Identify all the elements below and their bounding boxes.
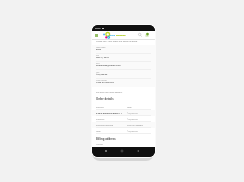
staticText: PAYMENT METHOD: <box>96 80 108 82</box>
button[interactable]: Back <box>136 149 139 152</box>
staticText: Total <box>127 106 151 109</box>
staticText: Payment method <box>96 124 127 127</box>
staticText: ₹28,000.00 <box>96 73 108 76</box>
staticText: 0.25/0 Diamond Rings × 1 <box>96 112 127 115</box>
button[interactable]: Home <box>120 149 123 152</box>
staticText: Subtotal <box>96 118 127 121</box>
button[interactable]: PAYMENT METHOD: <box>92 79 155 87</box>
button[interactable]: EMAIL: <box>92 62 155 70</box>
staticText: May 3, 2018 <box>96 56 109 59</box>
button[interactable]: TOTAL: <box>92 71 155 79</box>
button[interactable]: Recent apps <box>104 149 107 152</box>
staticText: ₹28,000.00 <box>127 118 151 121</box>
staticText: Billing address <box>96 137 116 141</box>
staticText: TOTAL: <box>96 72 100 74</box>
button[interactable]: Search <box>138 33 142 37</box>
staticText: EMAIL: <box>96 63 100 65</box>
staticText: mena <box>109 34 116 37</box>
staticText: ₹28,000.00 <box>127 130 151 133</box>
staticText: 6066 <box>96 48 102 51</box>
staticText: Product <box>96 106 127 109</box>
button[interactable]: DATE: <box>92 54 155 62</box>
staticText: Ahmed <box>96 143 103 146</box>
staticText: Order details <box>96 97 114 101</box>
staticText: DATE: <box>96 55 100 57</box>
staticText: Pay with cash upon delivery. <box>96 91 123 94</box>
staticText: shopped <box>116 34 126 37</box>
staticText: 09:45 <box>95 27 101 30</box>
staticText: ORDER NUMBER: <box>96 47 106 49</box>
button[interactable]: ORDER NUMBER: <box>92 46 155 54</box>
staticText: Total <box>96 130 127 133</box>
staticText: Cash on delivery <box>127 124 151 127</box>
staticText: Thank you. Your order has been received. <box>96 40 138 43</box>
staticText: Cash on delivery <box>96 81 114 84</box>
staticText: ₹28,000.00 <box>127 112 151 115</box>
button[interactable]: Cart <box>145 33 149 37</box>
staticText: ahmed555@gmail.com <box>96 64 121 67</box>
